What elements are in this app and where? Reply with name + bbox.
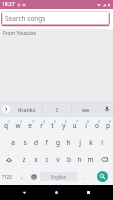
staticText: y xyxy=(62,121,66,130)
button[interactable]: English xyxy=(40,172,77,181)
staticText: thanks xyxy=(18,106,36,113)
staticText: q xyxy=(4,121,8,130)
staticText: k xyxy=(89,138,93,147)
button[interactable]: y xyxy=(58,117,69,134)
button[interactable]: we xyxy=(72,101,100,117)
staticText: English xyxy=(51,174,67,180)
button[interactable]: j xyxy=(74,134,85,151)
button[interactable]: q xyxy=(0,117,12,134)
staticText: s xyxy=(23,138,27,147)
staticText: w xyxy=(15,121,21,130)
staticText: From Youtube xyxy=(3,30,37,37)
staticText: t xyxy=(51,121,54,130)
staticText: 8 xyxy=(87,119,90,124)
button[interactable]: g xyxy=(52,134,63,151)
staticText: n xyxy=(77,155,82,164)
staticText: m xyxy=(87,155,94,164)
button[interactable]: I xyxy=(43,101,71,117)
button[interactable]: e xyxy=(24,117,36,134)
staticText: i xyxy=(85,121,87,130)
button[interactable]: n xyxy=(74,151,85,168)
button[interactable]: x xyxy=(30,151,41,168)
staticText: Search songs xyxy=(5,14,46,23)
staticText: j xyxy=(79,138,81,147)
button[interactable]: Search xyxy=(92,168,113,185)
button[interactable]: s xyxy=(19,134,30,151)
button[interactable]: Emoji xyxy=(29,168,39,185)
button[interactable]: h xyxy=(63,134,74,151)
staticText: 18:27 xyxy=(2,1,15,8)
button[interactable]: d xyxy=(30,134,41,151)
staticText: , xyxy=(21,173,23,181)
staticText: r xyxy=(40,121,43,130)
button[interactable]: k xyxy=(85,134,96,151)
staticText: e xyxy=(28,121,32,130)
staticText: b xyxy=(67,155,71,164)
staticText: c xyxy=(45,155,49,164)
button[interactable]: Voice input xyxy=(100,101,113,117)
staticText: 4 xyxy=(43,119,46,124)
staticText: u xyxy=(72,121,77,130)
staticText: h xyxy=(66,138,71,147)
staticText: 6 xyxy=(65,119,68,124)
button[interactable]: i xyxy=(80,117,91,134)
staticText: 5 xyxy=(54,119,57,124)
button[interactable]: a xyxy=(7,134,19,151)
button[interactable]: Recent apps xyxy=(81,185,96,200)
staticText: f xyxy=(45,138,48,147)
staticText: I xyxy=(56,106,58,113)
button[interactable]: m xyxy=(85,151,96,168)
staticText: 9 xyxy=(98,119,101,124)
staticText: x xyxy=(34,155,38,164)
staticText: v xyxy=(56,155,60,164)
staticText: . xyxy=(84,173,86,181)
staticText: ?123 xyxy=(2,174,12,180)
staticText: 2 xyxy=(20,119,23,124)
button[interactable]: Backspace xyxy=(96,151,113,168)
staticText: 1 xyxy=(8,119,11,124)
button[interactable]: Period xyxy=(78,168,92,185)
staticText: d xyxy=(34,138,38,147)
button[interactable]: Comma xyxy=(14,168,29,185)
button[interactable]: o xyxy=(91,117,102,134)
staticText: z xyxy=(22,155,26,164)
button[interactable]: u xyxy=(69,117,80,134)
button[interactable]: p xyxy=(102,117,113,134)
button[interactable]: thanks xyxy=(12,101,42,117)
button[interactable]: Expand suggestions xyxy=(0,101,12,117)
button[interactable]: l xyxy=(96,134,107,151)
button[interactable]: c xyxy=(41,151,52,168)
button[interactable]: f xyxy=(41,134,52,151)
button[interactable]: v xyxy=(52,151,63,168)
staticText: l xyxy=(101,138,103,147)
button[interactable]: ?123 xyxy=(0,168,14,185)
button[interactable]: z xyxy=(18,151,30,168)
button[interactable]: r xyxy=(36,117,47,134)
button[interactable]: w xyxy=(12,117,24,134)
button[interactable]: Back xyxy=(17,185,32,200)
button[interactable]: t xyxy=(47,117,58,134)
button[interactable]: Shift xyxy=(0,151,18,168)
staticText: a xyxy=(11,138,15,147)
staticText: 3 xyxy=(32,119,35,124)
button[interactable]: b xyxy=(63,151,74,168)
staticText: 0 xyxy=(109,119,112,124)
staticText: o xyxy=(95,121,99,130)
button[interactable]: Home xyxy=(49,185,64,200)
staticText: g xyxy=(56,138,60,147)
button[interactable]: Search songs xyxy=(1,11,110,26)
staticText: 7 xyxy=(76,119,79,124)
staticText: we xyxy=(82,106,90,113)
staticText: p xyxy=(106,121,110,130)
